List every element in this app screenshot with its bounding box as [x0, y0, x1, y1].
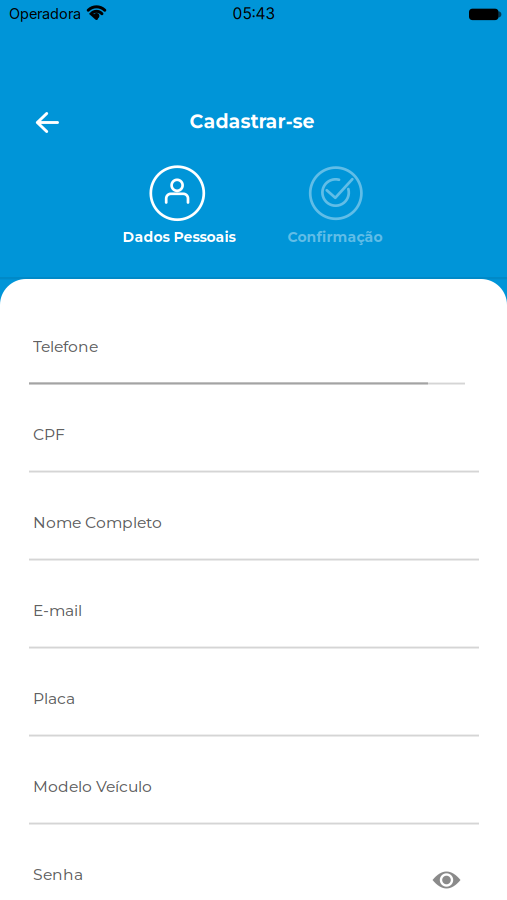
button[interactable]: Nome Completo [29, 501, 479, 561]
button[interactable]: E-mail [29, 589, 479, 649]
staticText: Telefone [33, 337, 98, 356]
button[interactable]: Mostrar senha [424, 860, 468, 900]
staticText: Nome Completo [33, 513, 162, 532]
button[interactable]: Back [25, 100, 69, 144]
staticText: Cadastrar-se [189, 110, 314, 133]
button[interactable]: Modelo Veículo [29, 765, 479, 825]
staticText: Dados Pessoais [122, 228, 235, 246]
staticText: Operadora [9, 5, 81, 22]
button[interactable]: Telefone [29, 325, 479, 385]
staticText: CPF [33, 425, 65, 444]
staticText: E-mail [33, 601, 82, 620]
staticText: Modelo Veículo [33, 777, 152, 796]
button[interactable]: Senha [29, 853, 479, 900]
staticText: Placa [33, 689, 75, 708]
staticText: Confirmação [287, 228, 382, 246]
staticText: 05:43 [232, 4, 275, 23]
staticText: Senha [33, 865, 83, 884]
button[interactable]: CPF [29, 413, 479, 473]
button[interactable]: Placa [29, 677, 479, 737]
